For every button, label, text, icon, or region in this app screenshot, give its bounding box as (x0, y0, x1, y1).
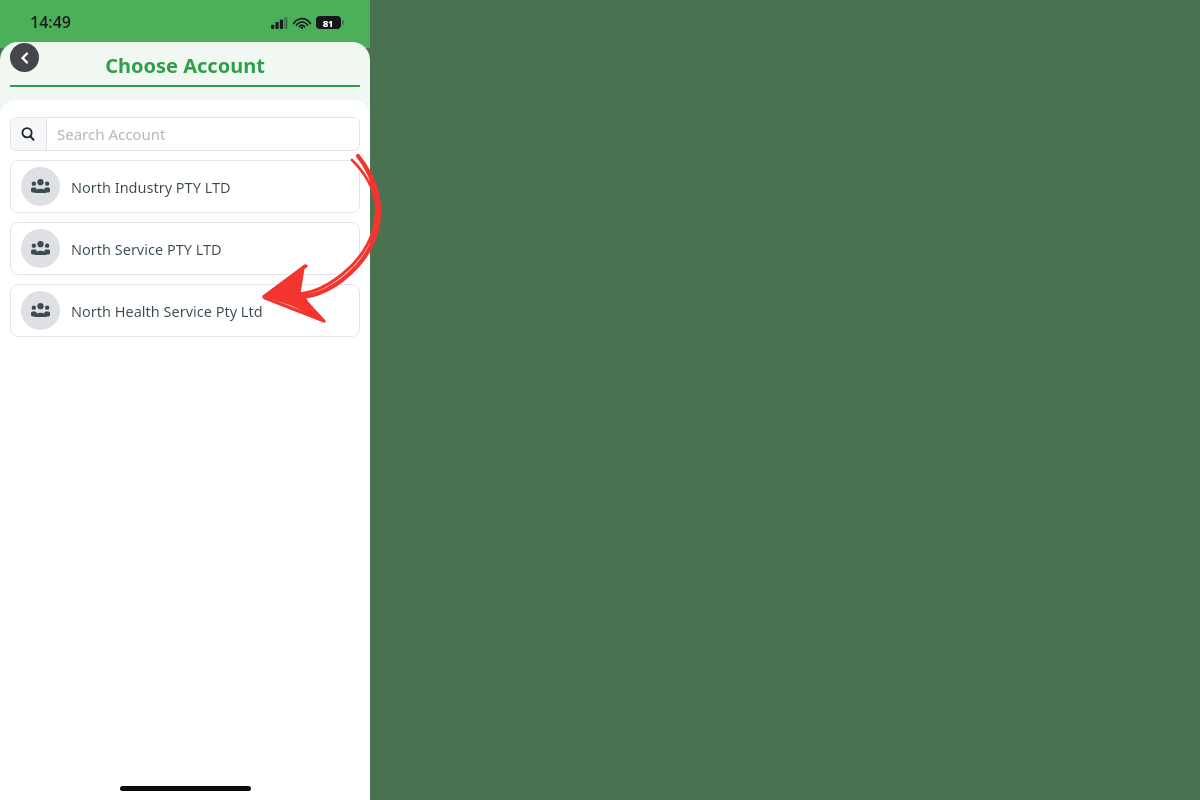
staticText: North Health Service Pty Ltd (71, 301, 263, 321)
button[interactable]: North Service PTY LTD (10, 222, 360, 275)
staticText: North Industry PTY LTD (71, 177, 231, 197)
button[interactable]: North Health Service Pty Ltd (10, 284, 360, 337)
button[interactable]: Back (10, 43, 39, 72)
staticText: Choose Account (105, 52, 265, 79)
staticText: Search Account (57, 124, 166, 144)
button[interactable]: North Industry PTY LTD (10, 160, 360, 213)
staticText: 81 (323, 17, 334, 29)
staticText: North Service PTY LTD (71, 239, 222, 259)
staticText: 14:49 (30, 11, 72, 33)
button[interactable]: Search Account (10, 117, 360, 151)
